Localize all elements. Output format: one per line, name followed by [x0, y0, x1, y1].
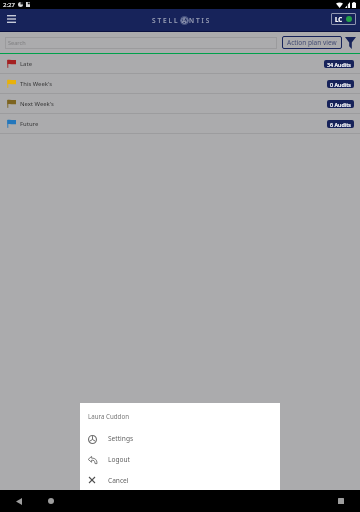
button[interactable]: Recent apps: [334, 494, 348, 508]
button[interactable]: Settings: [80, 428, 280, 449]
staticText: 2:27: [3, 1, 15, 9]
staticText: Late: [20, 60, 32, 68]
staticText: A: [182, 16, 187, 25]
staticText: This Week's: [20, 80, 53, 88]
staticText: Future: [20, 120, 39, 128]
button[interactable]: LC: [331, 13, 356, 25]
staticText: 0 Audits: [330, 81, 351, 88]
button[interactable]: Next Week's: [0, 94, 360, 113]
button[interactable]: Future: [0, 114, 360, 133]
button[interactable]: Action plan view: [282, 36, 342, 49]
button[interactable]: Home: [44, 494, 58, 508]
staticText: NTIS: [189, 16, 212, 25]
button[interactable]: Logout: [80, 449, 280, 470]
staticText: STELL: [152, 16, 180, 25]
staticText: Cancel: [108, 476, 129, 485]
staticText: Action plan view: [287, 38, 337, 47]
button[interactable]: This Week's: [0, 74, 360, 93]
staticText: Next Week's: [20, 100, 54, 108]
staticText: Laura Cuddon: [88, 412, 129, 420]
staticText: Logout: [108, 455, 130, 464]
button[interactable]: Cancel: [80, 470, 280, 490]
staticText: LC: [335, 15, 343, 23]
staticText: 0 Audits: [330, 101, 351, 108]
staticText: 6 Audits: [330, 121, 351, 128]
staticText: Search: [8, 39, 26, 47]
button[interactable]: Back: [12, 494, 26, 508]
staticText: Settings: [108, 434, 134, 443]
button[interactable]: Search: [5, 37, 277, 49]
staticText: 34 Audits: [327, 61, 351, 68]
button[interactable]: Late: [0, 54, 360, 73]
button[interactable]: Open navigation menu: [3, 10, 20, 27]
button[interactable]: Filter: [344, 37, 356, 49]
